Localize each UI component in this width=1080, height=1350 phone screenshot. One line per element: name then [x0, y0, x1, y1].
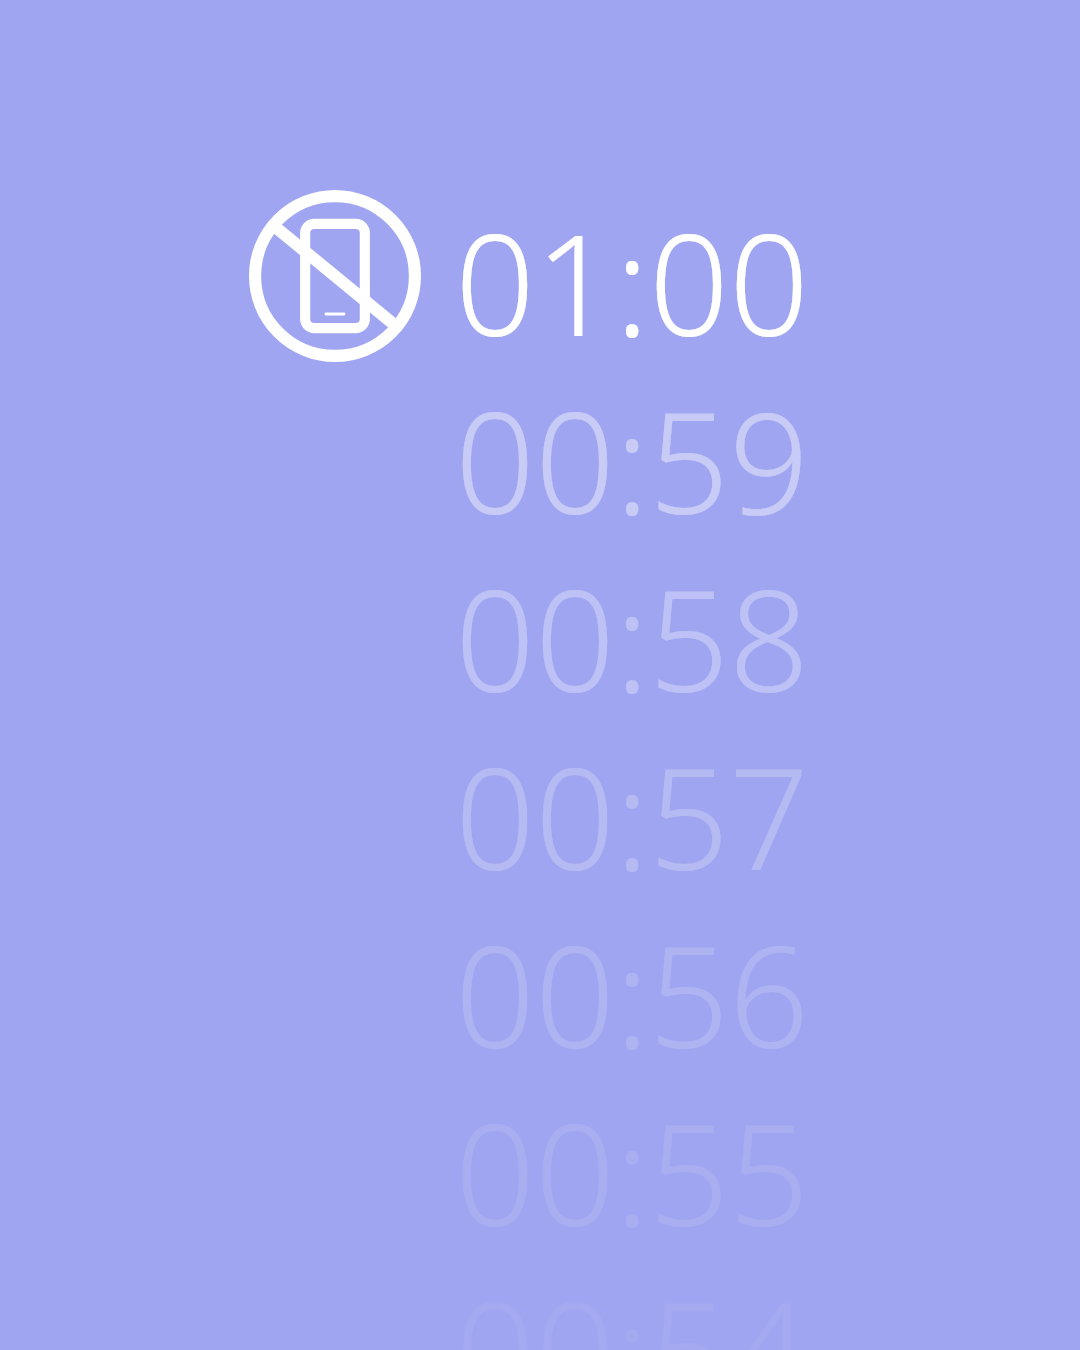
button[interactable]: 01:00 — [455, 186, 895, 366]
button[interactable]: 00:59 — [455, 364, 895, 544]
button[interactable]: 00:57 — [455, 720, 895, 900]
staticText: 00:56 — [455, 898, 809, 1078]
button[interactable]: Phone use not allowed — [249, 190, 421, 362]
staticText: 01:00 — [455, 186, 809, 366]
button[interactable]: 00:56 — [455, 898, 895, 1078]
staticText: 00:58 — [455, 542, 809, 722]
staticText: 00:59 — [455, 364, 809, 544]
button[interactable]: 00:58 — [455, 542, 895, 722]
staticText: 00:57 — [455, 720, 809, 900]
staticText: 00:55 — [455, 1076, 809, 1256]
